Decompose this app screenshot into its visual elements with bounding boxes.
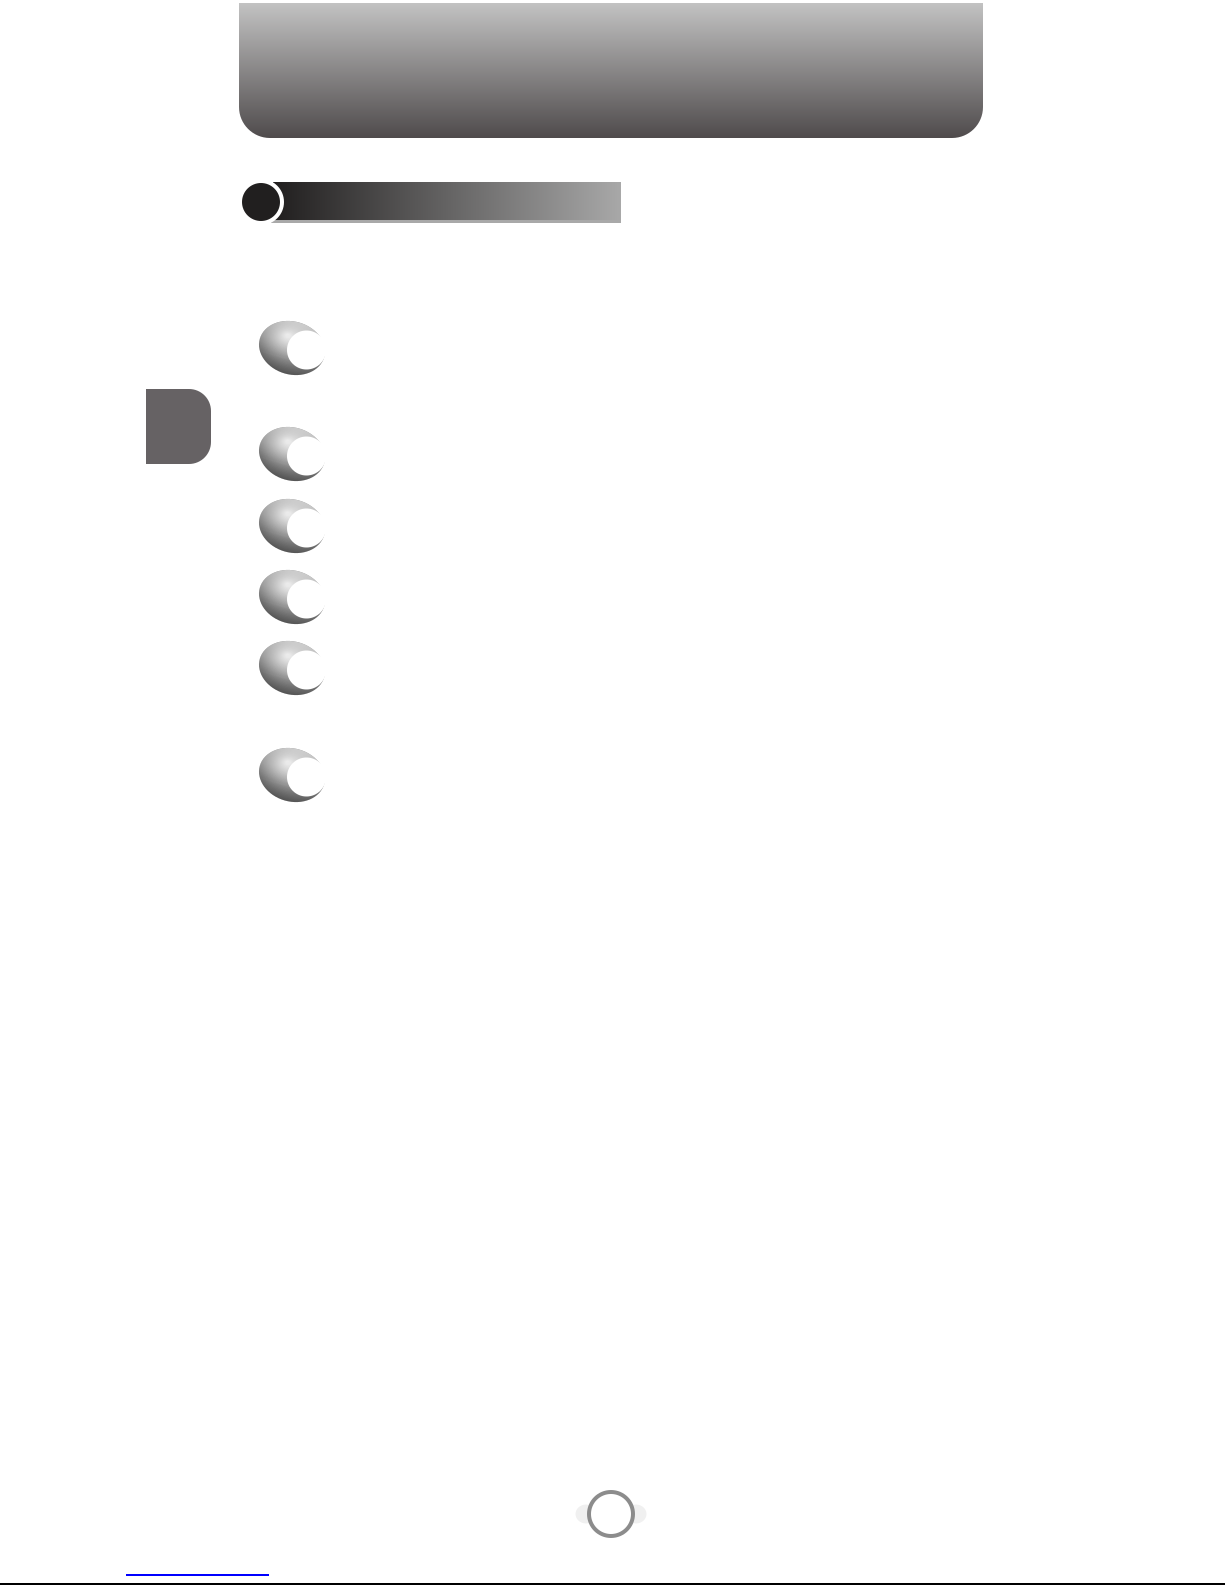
- button[interactable]: List item 5: [259, 641, 322, 694]
- button[interactable]: List item 4: [259, 570, 322, 623]
- button[interactable]: Featured banner: [239, 3, 983, 138]
- button[interactable]: List item 1: [259, 321, 322, 374]
- button[interactable]: List item 6: [259, 748, 322, 801]
- button[interactable]: List item 2: [259, 427, 322, 480]
- button[interactable]: Section heading: [242, 180, 624, 224]
- button[interactable]: List item 3: [259, 499, 322, 552]
- button[interactable]: Page indicator: [589, 1492, 633, 1536]
- button[interactable]: Sidebar tab: [146, 389, 211, 464]
